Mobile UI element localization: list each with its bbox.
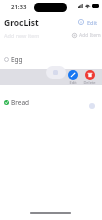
staticText: Bread xyxy=(11,98,30,107)
staticText: Add Item xyxy=(79,32,101,39)
button[interactable]: Edit xyxy=(68,70,78,85)
staticText: Edit xyxy=(69,80,77,85)
staticText: GrocList xyxy=(4,17,39,29)
button[interactable]: Bread xyxy=(4,95,102,110)
button[interactable]: Add Item xyxy=(72,32,101,39)
staticText: Add new item xyxy=(4,32,40,39)
button[interactable]: Info xyxy=(78,19,84,25)
staticText: 21:33 xyxy=(11,3,27,11)
button[interactable]: Delete xyxy=(83,70,96,85)
button[interactable]: Egg xyxy=(4,52,102,67)
button[interactable]: Edit xyxy=(87,19,98,26)
staticText: Edit xyxy=(87,19,98,26)
staticText: Delete xyxy=(83,80,96,85)
staticText: Egg xyxy=(11,55,23,64)
